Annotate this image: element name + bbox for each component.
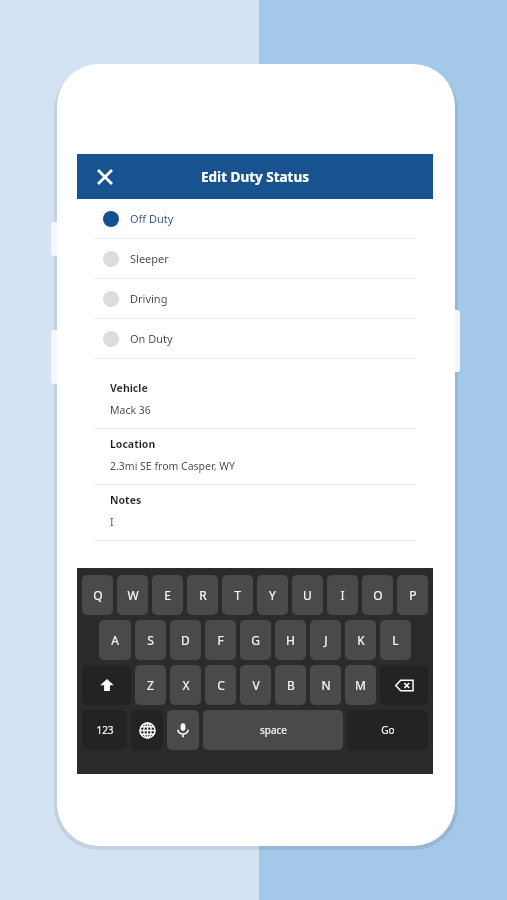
staticText: Location <box>110 437 156 451</box>
staticText: A <box>111 632 119 648</box>
staticText: Q <box>93 587 103 603</box>
button[interactable]: Off Duty <box>77 199 433 238</box>
button[interactable]: On Duty <box>77 319 433 358</box>
button[interactable]: Go <box>347 710 428 750</box>
button[interactable]: T <box>222 575 253 615</box>
button[interactable]: I <box>327 575 358 615</box>
staticText: L <box>392 632 399 648</box>
button[interactable]: M <box>345 665 376 705</box>
staticText: M <box>355 677 366 693</box>
button[interactable]: V <box>240 665 271 705</box>
button[interactable]: Shift <box>82 665 131 705</box>
staticText: I <box>340 587 345 603</box>
staticText: Mack 36 <box>110 403 151 417</box>
button[interactable]: Close <box>90 162 120 192</box>
button[interactable]: Location <box>77 429 433 484</box>
staticText: E <box>164 587 171 603</box>
button[interactable]: Y <box>257 575 288 615</box>
staticText: H <box>286 632 295 648</box>
button[interactable]: P <box>397 575 428 615</box>
staticText: Vehicle <box>110 381 148 395</box>
staticText: X <box>182 677 190 693</box>
staticText: K <box>357 632 365 648</box>
staticText: space <box>260 723 287 737</box>
button[interactable]: U <box>292 575 323 615</box>
button[interactable]: S <box>135 620 166 660</box>
staticText: N <box>321 677 331 693</box>
staticText: W <box>127 587 139 603</box>
staticText: V <box>252 677 260 693</box>
staticText: On Duty <box>130 331 173 346</box>
button[interactable]: R <box>187 575 218 615</box>
staticText: P <box>409 587 417 603</box>
staticText: Notes <box>110 493 142 507</box>
button[interactable]: Vehicle <box>77 373 433 428</box>
staticText: F <box>217 632 224 648</box>
button[interactable]: B <box>275 665 306 705</box>
staticText: Sleeper <box>130 251 169 266</box>
button[interactable]: W <box>117 575 148 615</box>
button[interactable]: 123 <box>82 710 127 750</box>
staticText: Go <box>381 723 395 737</box>
button[interactable]: J <box>310 620 341 660</box>
button[interactable]: Backspace <box>380 665 428 705</box>
staticText: R <box>199 587 207 603</box>
staticText: T <box>234 587 241 603</box>
staticText: I <box>110 515 114 529</box>
button[interactable]: space <box>203 710 343 750</box>
staticText: G <box>251 632 260 648</box>
button[interactable]: Notes <box>77 485 433 540</box>
button[interactable]: Z <box>135 665 166 705</box>
staticText: B <box>287 677 295 693</box>
staticText: Driving <box>130 291 168 306</box>
staticText: U <box>303 587 312 603</box>
staticText: J <box>324 632 328 648</box>
button[interactable]: O <box>362 575 393 615</box>
button[interactable]: L <box>380 620 411 660</box>
button[interactable]: D <box>170 620 201 660</box>
button[interactable]: Sleeper <box>77 239 433 278</box>
staticText: D <box>181 632 190 648</box>
button[interactable]: Change keyboard <box>131 710 163 750</box>
staticText: Off Duty <box>130 211 174 226</box>
button[interactable]: Voice input <box>167 710 199 750</box>
staticText: C <box>217 677 225 693</box>
staticText: Z <box>147 677 154 693</box>
button[interactable]: Q <box>82 575 113 615</box>
button[interactable]: K <box>345 620 376 660</box>
button[interactable]: N <box>310 665 341 705</box>
button[interactable]: C <box>205 665 236 705</box>
button[interactable]: X <box>170 665 201 705</box>
button[interactable]: A <box>99 620 131 660</box>
staticText: S <box>147 632 154 648</box>
button[interactable]: E <box>152 575 183 615</box>
button[interactable]: G <box>240 620 271 660</box>
staticText: 2.3mi SE from Casper, WY <box>110 459 235 473</box>
button[interactable]: F <box>205 620 236 660</box>
button[interactable]: H <box>275 620 306 660</box>
staticText: 123 <box>96 723 114 737</box>
staticText: O <box>373 587 383 603</box>
staticText: Edit Duty Status <box>201 168 310 186</box>
staticText: Y <box>269 587 276 603</box>
button[interactable]: Driving <box>77 279 433 318</box>
